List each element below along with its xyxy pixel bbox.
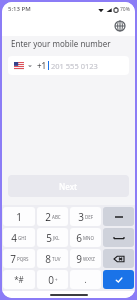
button[interactable]: 6 [70, 228, 101, 247]
button[interactable]: Change language [112, 18, 128, 34]
button[interactable]: Space [103, 228, 134, 247]
staticText: TUV [52, 256, 61, 262]
staticText: 5 [46, 231, 52, 245]
staticText: ABC [52, 214, 61, 220]
staticText: 7 [10, 252, 16, 266]
staticText: 9 [76, 252, 82, 266]
staticText: MNO [83, 235, 95, 241]
button[interactable]: 7 [3, 249, 35, 268]
staticText: *# [14, 274, 24, 285]
staticText: DEF [85, 214, 94, 220]
button[interactable]: *# [3, 270, 35, 289]
button[interactable]: 8 [37, 249, 68, 268]
button[interactable]: 4 [3, 228, 35, 247]
staticText: . [84, 274, 87, 285]
staticText: 5:13 PM [8, 5, 31, 13]
staticText: 2 [45, 210, 51, 224]
staticText: Enter your mobile number [11, 38, 111, 49]
staticText: + [55, 277, 58, 283]
button[interactable]: 0 [37, 270, 68, 289]
staticText: 70% [120, 6, 130, 13]
staticText: GHI [18, 235, 27, 241]
staticText: 6 [76, 231, 82, 245]
staticText: 0 [48, 273, 54, 287]
button[interactable]: 5 [37, 228, 68, 247]
button[interactable]: 9 [70, 249, 101, 268]
staticText: 3 [78, 210, 84, 224]
button[interactable]: Enter [103, 270, 134, 289]
staticText: PQRS [17, 256, 29, 262]
button[interactable]: 2 [37, 207, 68, 226]
staticText: 4 [11, 231, 17, 245]
button[interactable]: 3 [70, 207, 101, 226]
staticText: JKL [53, 235, 60, 241]
button[interactable]: . [70, 270, 101, 289]
staticText: 8 [45, 252, 51, 266]
button[interactable]: 1 [3, 207, 35, 226]
staticText: +1 [37, 60, 47, 71]
button[interactable]: Backspace [103, 249, 134, 268]
staticText: 201 555 0123 [51, 61, 98, 71]
staticText: 1 [16, 210, 22, 224]
button[interactable]: Next [8, 175, 129, 197]
staticText: WXYZ [83, 256, 95, 262]
button[interactable]: Dash [103, 207, 134, 226]
staticText: Next [59, 181, 78, 192]
button[interactable]: +1 [8, 56, 129, 75]
